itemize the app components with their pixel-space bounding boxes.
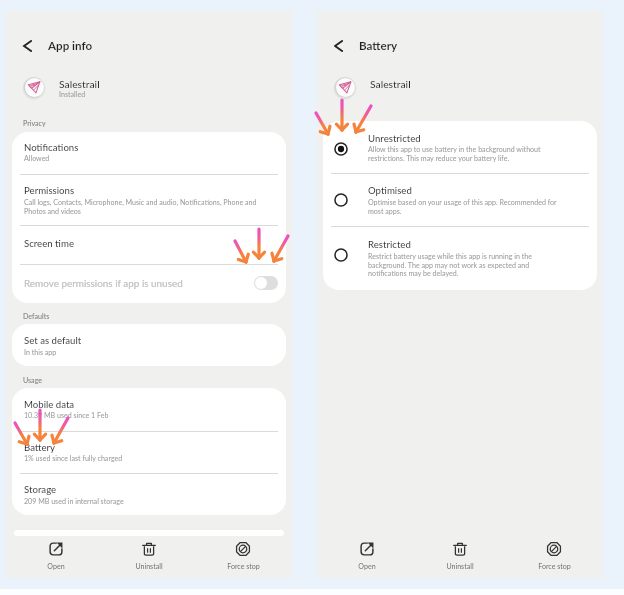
staticText: Remove permissions if app is unused (24, 277, 183, 289)
button[interactable]: Force stop (208, 537, 278, 569)
button[interactable]: Force stop (519, 537, 589, 569)
button[interactable]: Optimised (323, 173, 597, 226)
staticText: Battery (24, 442, 269, 454)
staticText: Privacy (23, 119, 46, 128)
button[interactable]: Mobile data (12, 388, 286, 431)
button[interactable]: Remove permissions if app is unused (12, 264, 286, 303)
staticText: 10.39 MB used since 1 Feb (24, 411, 269, 420)
button[interactable]: Screen time (12, 225, 286, 264)
staticText: Set as default (24, 335, 269, 347)
staticText: Usage (23, 376, 43, 385)
staticText: Optimise based on your usage of this app… (368, 198, 561, 216)
staticText: Salestrail (59, 78, 100, 90)
staticText: Uninstall (446, 562, 474, 571)
staticText: Battery (359, 39, 398, 53)
staticText: Optimised (368, 185, 568, 197)
staticText: 1% used since last fully charged (24, 454, 269, 463)
staticText: Notifications (24, 142, 269, 154)
staticText: Mobile data (24, 399, 269, 411)
button[interactable]: Back (325, 33, 351, 59)
staticText: Allow this app to use battery in the bac… (368, 145, 561, 163)
staticText: Force stop (538, 562, 571, 571)
staticText: 209 MB used in internal storage (24, 497, 269, 506)
button[interactable]: Back (14, 33, 40, 59)
staticText: Open (47, 562, 65, 571)
button[interactable]: Uninstall (114, 537, 184, 569)
button[interactable]: Restricted (323, 226, 597, 289)
staticText: Open (358, 562, 376, 571)
staticText: Restrict battery usage while this app is… (368, 252, 561, 278)
staticText: Salestrail (370, 78, 411, 90)
button[interactable]: Notifications (12, 132, 286, 174)
button[interactable]: Open (21, 537, 91, 569)
button[interactable]: Set as default (12, 324, 286, 366)
button[interactable]: Uninstall (425, 537, 495, 569)
staticText: Screen time (24, 238, 269, 250)
staticText: Restricted (368, 239, 568, 251)
staticText: Storage (24, 484, 269, 496)
staticText: App info (48, 39, 93, 53)
button[interactable]: Storage (12, 473, 286, 515)
staticText: Permissions (24, 185, 269, 197)
staticText: Call logs, Contacts, Microphone, Music a… (24, 198, 269, 216)
staticText: Defaults (23, 312, 50, 321)
button[interactable]: Battery (12, 431, 286, 473)
button[interactable]: Open (332, 537, 402, 569)
staticText: Force stop (227, 562, 260, 571)
staticText: Unrestricted (368, 133, 568, 145)
staticText: Uninstall (135, 562, 163, 571)
staticText: In this app (24, 348, 269, 357)
staticText: Installed (59, 90, 86, 99)
button[interactable]: Permissions (12, 174, 286, 226)
button[interactable]: Unrestricted (323, 121, 597, 173)
staticText: Allowed (24, 154, 269, 163)
